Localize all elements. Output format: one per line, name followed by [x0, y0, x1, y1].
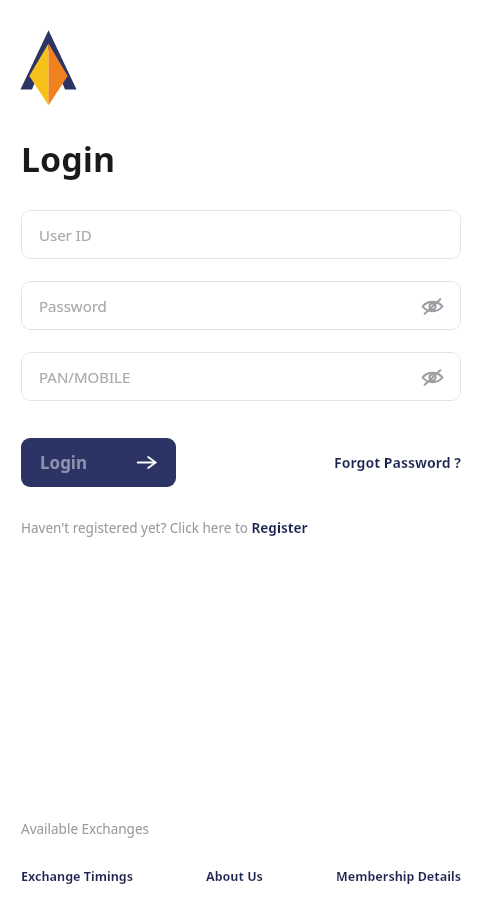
button[interactable]: Show password	[419, 293, 445, 319]
button[interactable]: Password	[21, 281, 461, 330]
staticText: Haven't registered yet? Click here to Re…	[21, 519, 308, 537]
other: App logo	[19, 27, 78, 106]
staticText: User ID	[39, 225, 92, 245]
staticText: Membership Details	[336, 868, 461, 885]
staticText: About Us	[206, 868, 263, 885]
button[interactable]: Membership Details	[336, 868, 461, 885]
staticText: Password	[39, 296, 107, 316]
staticText: Login	[21, 136, 116, 182]
staticText: Available Exchanges	[21, 820, 150, 838]
button[interactable]: Haven't registered yet? Click here to Re…	[21, 519, 308, 537]
button[interactable]: Forgot Password ?	[334, 453, 461, 472]
button[interactable]: Show password	[419, 364, 445, 390]
staticText: PAN/MOBILE	[39, 367, 131, 387]
button[interactable]: Login	[21, 438, 176, 487]
button[interactable]: User ID	[21, 210, 461, 259]
staticText: Login	[40, 451, 88, 474]
staticText: Exchange Timings	[21, 868, 133, 885]
button[interactable]: About Us	[206, 868, 263, 885]
button[interactable]: Exchange Timings	[21, 868, 133, 885]
button[interactable]: PAN/MOBILE	[21, 352, 461, 401]
staticText: Forgot Password ?	[334, 453, 461, 472]
